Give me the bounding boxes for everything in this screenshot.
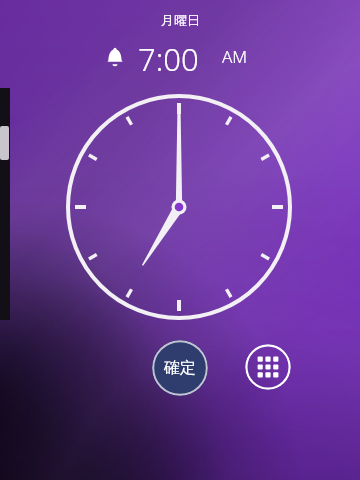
button[interactable]: Apps bbox=[245, 344, 291, 390]
button[interactable]: 確定 bbox=[152, 340, 208, 396]
staticText: AM bbox=[222, 45, 248, 68]
staticText: 月曜日 bbox=[161, 12, 200, 28]
staticText: 7:00 bbox=[138, 38, 199, 76]
button[interactable]: Alarm bbox=[101, 43, 129, 71]
staticText: 確定 bbox=[164, 358, 196, 378]
